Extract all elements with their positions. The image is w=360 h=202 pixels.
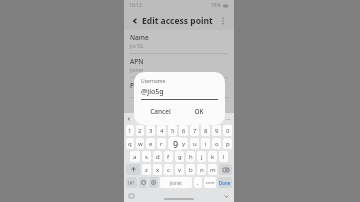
button[interactable]: Hide keyboard <box>222 192 230 200</box>
staticText: @jio5g <box>141 87 164 97</box>
staticText: y <box>182 140 186 148</box>
button[interactable]: w <box>136 138 144 149</box>
staticText: Jio 5G <box>130 43 144 50</box>
button[interactable]: p <box>223 138 232 149</box>
button[interactable]: Shift <box>126 164 140 175</box>
button[interactable]: v <box>175 164 184 175</box>
button[interactable]: h <box>186 151 195 162</box>
button[interactable]: 7 <box>190 125 199 136</box>
button[interactable]: d <box>153 151 162 162</box>
staticText: Edit access point <box>142 15 213 27</box>
button[interactable]: l <box>219 151 228 162</box>
button[interactable]: !#1 <box>126 177 137 188</box>
staticText: x <box>156 166 160 174</box>
button[interactable]: Keyboard settings <box>149 177 158 188</box>
staticText: z <box>145 166 148 174</box>
button[interactable]: More options <box>217 15 229 27</box>
button[interactable]: f <box>164 151 173 162</box>
staticText: e <box>149 140 153 148</box>
staticText: !#1 <box>128 180 135 186</box>
staticText: f <box>167 153 170 161</box>
staticText: Proxy <box>130 81 148 90</box>
staticText: 0 <box>226 127 230 135</box>
staticText: j <box>201 153 203 161</box>
button[interactable]: g <box>175 151 184 162</box>
button[interactable]: t <box>168 138 177 149</box>
button[interactable]: 5 <box>168 125 177 136</box>
button[interactable]: s <box>142 151 151 162</box>
staticText: jionet <box>170 180 182 186</box>
staticText: 4 <box>160 127 164 135</box>
button[interactable]: Backspace <box>219 164 232 175</box>
button[interactable]: 1 <box>126 125 134 136</box>
button[interactable]: More suggestions <box>222 113 234 124</box>
staticText: a <box>133 153 137 161</box>
staticText: n <box>200 166 204 174</box>
button[interactable]: . <box>194 177 202 188</box>
button[interactable]: y <box>179 138 188 149</box>
button[interactable]: APN <box>124 54 234 77</box>
button[interactable]: 8 <box>201 125 210 136</box>
button[interactable]: a <box>130 151 140 162</box>
button[interactable]: r <box>157 138 166 149</box>
staticText: p <box>226 140 230 148</box>
button[interactable]: Proxy <box>124 78 234 97</box>
staticText: m <box>210 166 216 174</box>
button[interactable]: k <box>208 151 217 162</box>
staticText: .com <box>205 180 215 185</box>
button[interactable]: Keyboard layout <box>128 193 134 198</box>
button[interactable]: 4 <box>157 125 166 136</box>
button[interactable]: z <box>142 164 151 175</box>
button[interactable]: Back <box>129 15 141 27</box>
button[interactable]: jionet <box>134 113 164 124</box>
button[interactable]: o <box>212 138 221 149</box>
button[interactable]: jio 5G <box>193 113 222 124</box>
button[interactable]: Done <box>218 177 232 188</box>
staticText: c <box>167 166 170 174</box>
button[interactable]: b <box>186 164 195 175</box>
staticText: s <box>145 153 148 161</box>
staticText: 6 <box>182 127 186 135</box>
staticText: 5 <box>171 127 175 135</box>
button[interactable]: 6 <box>179 125 188 136</box>
staticText: 8 <box>204 127 208 135</box>
staticText: 1 <box>128 127 132 135</box>
button[interactable]: Name <box>124 30 234 53</box>
button[interactable]: u <box>190 138 199 149</box>
button[interactable]: Previous suggestions <box>124 113 134 124</box>
staticText: 10:12 <box>129 2 142 9</box>
staticText: h <box>189 153 193 161</box>
button[interactable]: j <box>197 151 206 162</box>
button[interactable]: n <box>197 164 206 175</box>
button[interactable]: Space <box>160 177 192 188</box>
button[interactable]: 9 <box>212 125 221 136</box>
staticText: t <box>171 140 174 148</box>
button[interactable]: 3 <box>146 125 155 136</box>
button[interactable]: c <box>164 164 173 175</box>
button[interactable]: OK <box>179 104 218 119</box>
button[interactable]: i <box>201 138 210 149</box>
button[interactable]: q <box>126 138 134 149</box>
button[interactable]: m <box>208 164 217 175</box>
button[interactable]: 2 <box>136 125 144 136</box>
staticText: 9 <box>215 127 219 135</box>
staticText: jionet <box>130 67 144 74</box>
button[interactable]: 0 <box>223 125 232 136</box>
button[interactable]: jio <box>164 113 193 124</box>
button[interactable]: Cancel <box>141 104 179 119</box>
staticText: 9 <box>173 138 179 150</box>
staticText: ··· <box>226 115 231 123</box>
button[interactable]: e <box>146 138 155 149</box>
staticText: OK <box>194 107 204 116</box>
staticText: 3 <box>149 127 153 135</box>
staticText: g <box>178 153 182 161</box>
staticText: w <box>138 140 143 148</box>
button[interactable]: .com <box>204 177 216 188</box>
staticText: 76% <box>211 2 221 9</box>
staticText: APN <box>130 57 144 66</box>
staticText: d <box>156 153 160 161</box>
button[interactable]: Emoji <box>139 177 147 188</box>
button[interactable]: x <box>153 164 162 175</box>
